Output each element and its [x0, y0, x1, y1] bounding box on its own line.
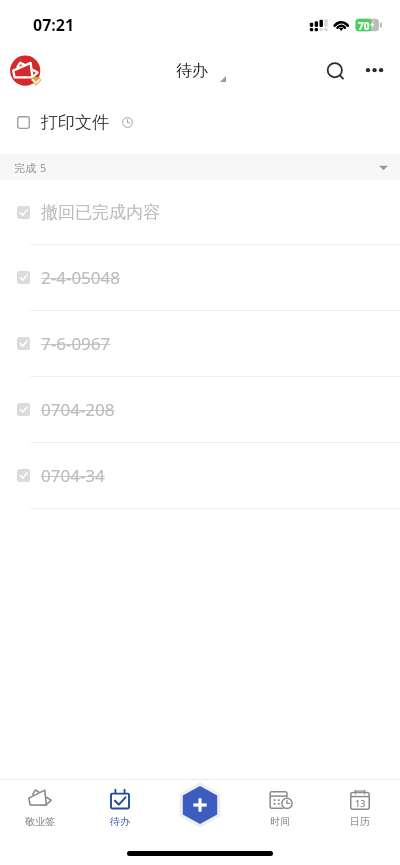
button[interactable]: 待办	[80, 780, 160, 840]
staticText: 13	[355, 797, 366, 809]
staticText: 5	[40, 160, 47, 175]
staticText: 7-6-0967	[41, 332, 111, 355]
staticText: 0704-34	[41, 464, 105, 487]
button[interactable]: 2-4-05048	[0, 245, 400, 310]
staticText: 70	[358, 19, 370, 33]
button[interactable]: 时间	[240, 780, 320, 840]
button[interactable]: Add new	[178, 782, 222, 828]
button[interactable]: 0704-34	[0, 443, 400, 508]
staticText: 打印文件	[41, 112, 109, 133]
staticText: 0704-208	[41, 398, 115, 421]
button[interactable]: Search	[322, 57, 352, 87]
staticText: 完成	[14, 161, 36, 175]
button[interactable]: 待办	[176, 61, 208, 81]
button[interactable]: 撤回已完成内容	[0, 180, 400, 244]
staticText: 2-4-05048	[41, 266, 121, 289]
staticText: 日历	[350, 815, 370, 828]
staticText: 07:21	[33, 14, 75, 36]
staticText: 撤回已完成内容	[41, 202, 160, 223]
button[interactable]: 0704-208	[0, 377, 400, 442]
button[interactable]: Profile	[9, 55, 42, 88]
staticText: 时间	[270, 815, 290, 828]
button[interactable]: More options	[356, 58, 388, 86]
button[interactable]: 7-6-0967	[0, 311, 400, 376]
staticText: 待办	[110, 815, 130, 828]
button[interactable]: 打印文件	[0, 100, 400, 154]
staticText: 敬业签	[25, 815, 55, 828]
button[interactable]: 敬业签	[0, 780, 80, 840]
button[interactable]: 13	[320, 780, 400, 840]
button[interactable]: 完成	[0, 154, 400, 180]
